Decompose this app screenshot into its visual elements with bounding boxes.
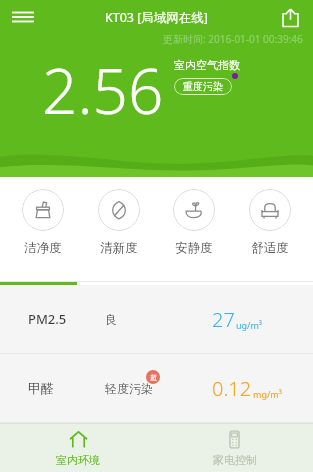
staticText: 甲醛 <box>28 380 54 396</box>
button[interactable]: PM2.5 <box>0 285 313 353</box>
staticText: PM2.5 <box>28 310 67 328</box>
staticText: 室内环境 <box>56 453 100 467</box>
staticText: 轻度污染 <box>105 381 153 396</box>
button[interactable]: 舒适度 <box>237 189 303 256</box>
button[interactable]: 甲醛 <box>0 354 313 422</box>
staticText: 良 <box>105 312 117 327</box>
staticText: 更新时间: 2016-01-01 00:39:46 <box>163 32 303 46</box>
button[interactable]: 清新度 <box>86 189 152 256</box>
staticText: ug/m³ <box>236 319 263 331</box>
button[interactable]: 家电控制 <box>156 424 313 472</box>
button[interactable]: Menu <box>0 0 46 34</box>
staticText: 安静度 <box>175 240 213 256</box>
button[interactable]: 安静度 <box>161 189 227 256</box>
button[interactable]: Share <box>267 0 313 34</box>
button[interactable]: 重度污染 <box>174 78 232 95</box>
staticText: mg/m³ <box>253 388 282 400</box>
staticText: 清新度 <box>100 240 138 256</box>
button[interactable]: 洁净度 <box>10 189 76 256</box>
staticText: 超 <box>150 373 157 382</box>
button[interactable]: 室内环境 <box>0 424 156 472</box>
staticText: 舒适度 <box>251 240 289 256</box>
staticText: 重度污染 <box>183 80 223 93</box>
staticText: 2.56 <box>42 48 164 132</box>
staticText: 27 <box>212 306 235 333</box>
staticText: 0.12 <box>212 375 252 402</box>
staticText: 家电控制 <box>213 453 257 467</box>
staticText: 洁净度 <box>24 240 62 256</box>
staticText: 室内空气指数 <box>174 58 240 72</box>
staticText: KT03 [局域网在线] <box>105 9 208 26</box>
